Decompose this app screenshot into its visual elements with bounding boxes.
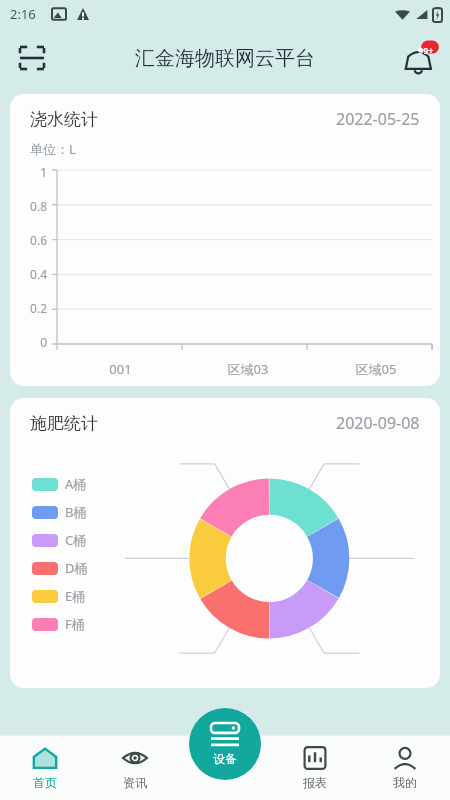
button[interactable]: 报表 xyxy=(270,735,360,800)
staticText: 1 xyxy=(10,164,47,180)
staticText: 首页 xyxy=(33,775,57,790)
staticText: 我的 xyxy=(393,775,417,790)
staticText: F桶 xyxy=(65,615,85,633)
staticText: 99+ xyxy=(418,44,434,56)
staticText: 设备 xyxy=(213,751,237,766)
staticText: E桶 xyxy=(65,587,86,605)
staticText: 0.2 xyxy=(10,300,47,316)
button[interactable]: 施肥统计 xyxy=(10,398,440,688)
staticText: 0.4 xyxy=(10,266,47,282)
button[interactable]: 首页 xyxy=(0,735,90,800)
staticText: A桶 xyxy=(65,475,87,493)
button[interactable]: Notifications xyxy=(396,34,444,82)
staticText: 报表 xyxy=(303,775,327,790)
staticText: 区域03 xyxy=(184,360,312,378)
staticText: 单位：L xyxy=(30,140,76,158)
button[interactable]: Scan xyxy=(10,36,54,80)
staticText: B桶 xyxy=(65,503,87,521)
staticText: 区域05 xyxy=(312,360,440,378)
staticText: 汇金海物联网云平台 xyxy=(135,46,315,71)
button[interactable]: 我的 xyxy=(360,735,450,800)
staticText: 浇水统计 xyxy=(30,109,98,130)
staticText: C桶 xyxy=(65,531,87,549)
staticText: 2:16 xyxy=(10,5,36,23)
staticText: 施肥统计 xyxy=(30,413,98,434)
staticText: 0 xyxy=(10,334,47,350)
staticText: 2022-05-25 xyxy=(336,108,420,130)
staticText: 资讯 xyxy=(123,775,147,790)
button[interactable]: 资讯 xyxy=(90,735,180,800)
staticText: D桶 xyxy=(65,559,88,577)
button[interactable]: 浇水统计 xyxy=(10,94,440,386)
button[interactable]: 设备 xyxy=(189,708,261,780)
staticText: 2020-09-08 xyxy=(336,412,420,434)
staticText: 001 xyxy=(57,360,184,378)
staticText: 0.8 xyxy=(10,198,47,214)
staticText: 0.6 xyxy=(10,232,47,248)
